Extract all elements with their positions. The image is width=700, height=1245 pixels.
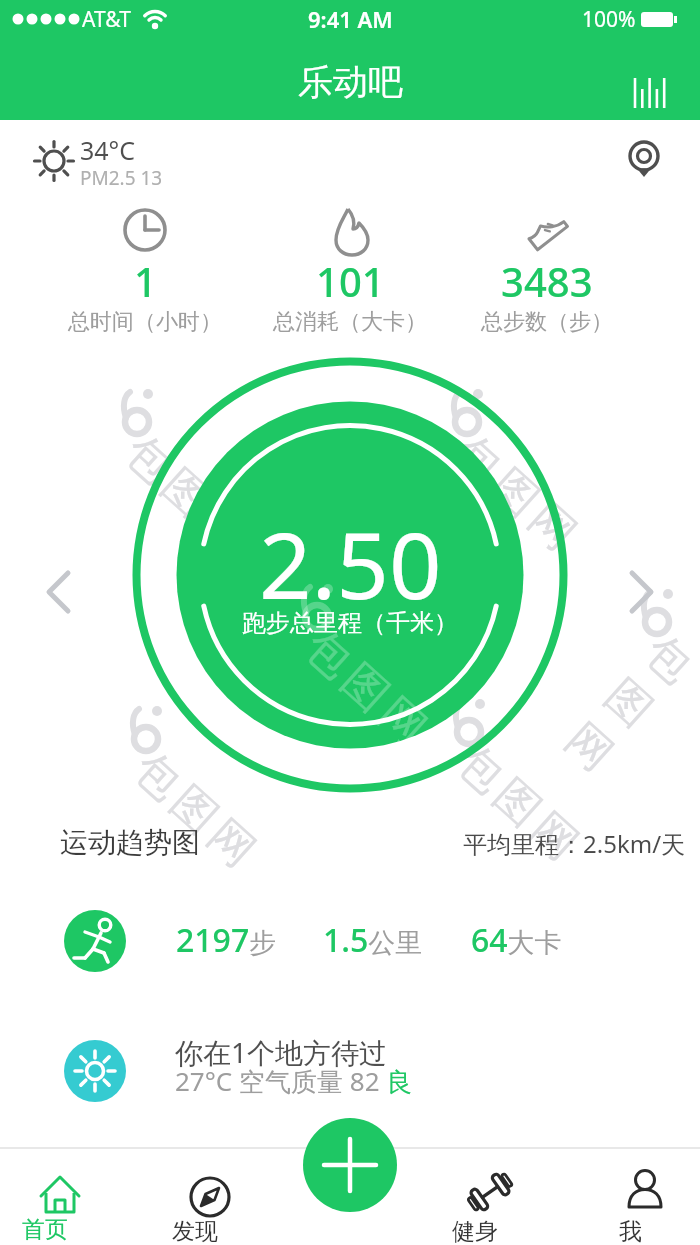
staticText: 34°C [80, 133, 136, 167]
staticText: 2197步 [176, 918, 277, 962]
button[interactable] [620, 132, 670, 184]
staticText: 1 [134, 254, 157, 308]
staticText: PM2.5 13 [80, 165, 163, 191]
staticText: 9:41 AM [308, 4, 393, 34]
staticText: 总时间（小时） [68, 308, 222, 336]
button[interactable] [622, 66, 678, 120]
staticText: 跑步总里程（千米） [242, 608, 458, 638]
staticText: 总消耗（大卡） [273, 308, 427, 336]
button[interactable]: 首页 [15, 1155, 105, 1245]
button[interactable]: 我 [600, 1155, 690, 1245]
staticText: 总步数（步） [481, 308, 613, 336]
button[interactable] [40, 898, 660, 984]
button[interactable]: 健身 [445, 1155, 535, 1245]
staticText: 首页 [22, 1215, 68, 1244]
button[interactable] [303, 1118, 397, 1212]
staticText: 平均里程：2.5km/天 [463, 827, 686, 860]
staticText: 1.5公里 [323, 918, 423, 962]
button[interactable] [612, 562, 670, 622]
staticText: 运动趋势图 [60, 825, 200, 860]
staticText: 你在1个地方待过 [175, 1033, 388, 1071]
staticText: 健身 [452, 1217, 498, 1245]
staticText: 64大卡 [471, 918, 562, 962]
staticText: 2.50 [259, 501, 442, 626]
staticText: 乐动吧 [298, 60, 403, 104]
staticText: AT&T [82, 5, 131, 34]
staticText: 发现 [172, 1217, 218, 1245]
staticText: 我 [619, 1217, 642, 1245]
button[interactable] [30, 562, 88, 622]
staticText: 101 [316, 254, 385, 308]
staticText: 100% [582, 5, 636, 34]
staticText: 3483 [501, 254, 593, 308]
button[interactable]: 发现 [165, 1155, 255, 1245]
staticText: 27°C 空气质量 82 良 [175, 1063, 413, 1099]
button[interactable] [40, 1028, 660, 1114]
